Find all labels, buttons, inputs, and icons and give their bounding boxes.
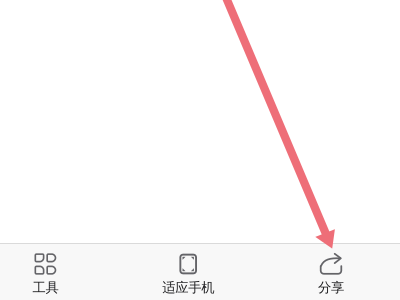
button[interactable]: 适应手机 [117, 244, 260, 300]
button[interactable]: 工具 [0, 244, 117, 300]
button[interactable]: 分享 [260, 244, 400, 300]
staticText: 分享 [318, 279, 344, 296]
staticText: 适应手机 [162, 279, 214, 296]
staticText: 工具 [32, 279, 58, 296]
